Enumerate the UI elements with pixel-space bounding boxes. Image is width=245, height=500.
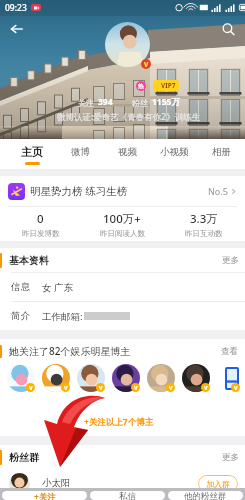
button[interactable]: 信息: [11, 273, 237, 301]
button[interactable]: 小太阳: [9, 469, 238, 497]
staticText: V: [234, 384, 238, 391]
staticText: 昨日互动数: [185, 229, 223, 238]
staticText: 09:23: [5, 2, 27, 14]
staticText: 女 广东: [42, 281, 73, 294]
button[interactable]: Blogger avatar: [182, 364, 210, 392]
staticText: 她关注了82个娱乐明星博主: [9, 344, 131, 358]
staticText: 主页: [21, 145, 43, 159]
staticText: 粉丝: [132, 98, 148, 108]
staticText: 基本资料: [9, 254, 49, 267]
staticText: 昨日发博数: [22, 229, 60, 238]
button[interactable]: 明星势力榜 练习生榜: [8, 176, 237, 206]
button[interactable]: Blogger avatar: [7, 364, 35, 392]
staticText: 3.3万: [190, 211, 218, 227]
staticText: +关注: [34, 491, 56, 500]
button[interactable]: 视频: [104, 139, 151, 169]
button[interactable]: 相册: [198, 139, 245, 169]
staticText: V: [169, 384, 173, 391]
button[interactable]: 微博: [56, 139, 104, 169]
button[interactable]: Blogger avatar: [42, 364, 70, 392]
button[interactable]: Blogger avatar: [77, 364, 105, 392]
staticText: 100万+: [103, 211, 141, 227]
staticText: 微博: [71, 146, 90, 158]
button[interactable]: More bloggers: [225, 367, 239, 390]
button[interactable]: +关注: [2, 491, 87, 500]
staticText: 0: [37, 211, 44, 227]
button[interactable]: 3.3万: [163, 207, 245, 241]
staticText: V: [134, 384, 138, 391]
staticText: VIP7: [161, 81, 176, 90]
button[interactable]: 她关注了82个娱乐明星博主: [0, 339, 245, 363]
staticText: 工作邮箱:: [42, 310, 83, 323]
staticText: 明星势力榜 练习生榜: [30, 184, 128, 198]
button[interactable]: Blogger avatar: [147, 364, 175, 392]
staticText: V: [64, 384, 68, 391]
staticText: 简介: [11, 310, 30, 322]
staticText: 相册: [212, 146, 231, 158]
staticText: V: [204, 384, 208, 391]
button[interactable]: Blogger avatar: [112, 364, 140, 392]
staticText: +关注以上7个博主: [84, 416, 154, 428]
staticText: 粉丝群: [9, 451, 39, 464]
staticText: 394: [98, 96, 113, 108]
staticText: V: [29, 384, 33, 391]
button[interactable]: 0: [0, 207, 81, 241]
staticText: V: [144, 60, 149, 69]
button[interactable]: 简介: [11, 302, 237, 330]
button[interactable]: 加入群: [198, 475, 238, 492]
button[interactable]: 主页: [8, 139, 56, 169]
staticText: 他的粉丝群: [184, 491, 227, 500]
button[interactable]: 私信: [90, 491, 165, 500]
button[interactable]: 100万+: [81, 207, 163, 241]
staticText: 微博认证:爱奇艺《青春有你2》训练生: [57, 111, 201, 123]
staticText: 关注: [78, 98, 94, 108]
button[interactable]: 基本资料: [0, 248, 245, 272]
staticText: 昨日阅读人数: [100, 229, 145, 238]
staticText: 小太阳: [42, 477, 71, 489]
button[interactable]: 小视频: [151, 139, 198, 169]
button[interactable]: 粉丝群: [0, 445, 245, 469]
staticText: 加入群: [206, 479, 230, 489]
staticText: 查看: [221, 346, 238, 357]
staticText: 小视频: [160, 146, 189, 158]
button[interactable]: Back: [3, 15, 31, 43]
button[interactable]: 他的粉丝群: [168, 491, 243, 500]
button[interactable]: Search: [214, 15, 242, 43]
staticText: 热: [138, 83, 144, 90]
staticText: 私信: [119, 491, 136, 500]
staticText: No.5: [208, 185, 228, 197]
staticText: 1155万: [152, 96, 180, 108]
button[interactable]: Profile avatar: [105, 22, 150, 67]
staticText: 更多: [222, 255, 239, 266]
staticText: 信息: [11, 281, 30, 293]
staticText: V: [99, 384, 103, 391]
staticText: 视频: [118, 146, 137, 158]
staticText: 更多: [222, 452, 239, 463]
